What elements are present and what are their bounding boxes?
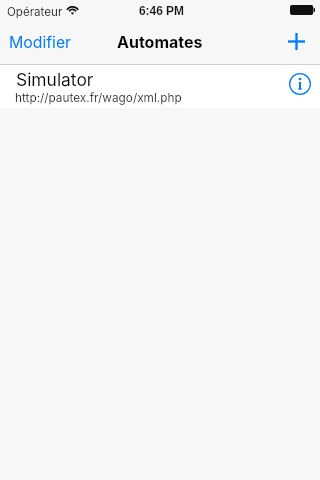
other: Battery full — [290, 5, 315, 15]
staticText: Opérateur — [7, 5, 63, 19]
staticText: http://pautex.fr/wago/xml.php — [15, 91, 182, 105]
staticText: 6:46 PM — [139, 4, 184, 17]
staticText: Automates — [117, 32, 203, 51]
button[interactable]: Simulator — [0, 65, 320, 108]
button[interactable]: Add — [276, 24, 320, 60]
staticText: Simulator — [16, 69, 94, 90]
other: Wi-Fi — [66, 5, 79, 16]
staticText: Modifier — [9, 33, 72, 52]
button[interactable]: Modifier — [0, 25, 82, 60]
button[interactable]: Info — [277, 65, 320, 107]
